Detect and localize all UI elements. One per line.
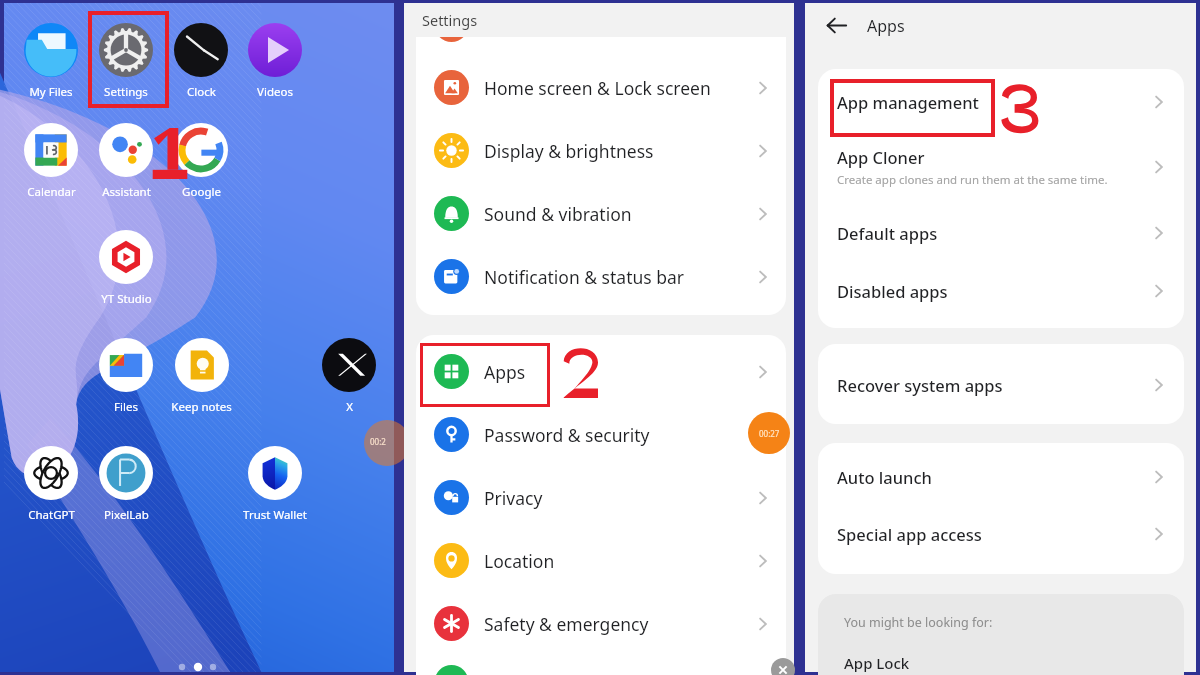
- staticText: 00:27: [759, 428, 780, 439]
- staticText: Recover system apps: [837, 374, 1003, 396]
- staticText: Clock: [187, 84, 216, 100]
- staticText: App Lock: [844, 653, 910, 673]
- button[interactable]: Trust Wallet: [243, 446, 307, 523]
- staticText: Sound & vibration: [484, 202, 632, 226]
- staticText: Privacy: [484, 486, 543, 510]
- button[interactable]: Home screen & Lock screen: [416, 56, 786, 119]
- button[interactable]: Safety & emergency: [416, 592, 786, 655]
- button[interactable]: Calendar: [24, 123, 78, 200]
- staticText: Settings: [104, 84, 148, 100]
- button[interactable]: App management: [818, 73, 1184, 130]
- staticText: X: [346, 399, 353, 415]
- button[interactable]: Sound & vibration: [416, 182, 786, 245]
- staticText: Special app access: [837, 523, 982, 545]
- button[interactable]: PixelLab: [99, 446, 153, 523]
- staticText: You might be looking for:: [844, 614, 993, 631]
- button[interactable]: Keep notes: [171, 338, 232, 415]
- button[interactable]: Close: [771, 658, 795, 675]
- staticText: Display & brightness: [484, 139, 654, 163]
- button[interactable]: Location: [416, 529, 786, 592]
- button[interactable]: Google: [174, 123, 228, 200]
- button[interactable]: Assistant: [99, 123, 153, 200]
- button[interactable]: My Files: [24, 23, 78, 100]
- staticText: Location: [484, 549, 555, 573]
- button[interactable]: Timer: [748, 412, 790, 454]
- button[interactable]: Privacy: [416, 466, 786, 529]
- staticText: App management: [837, 91, 979, 113]
- staticText: Assistant: [102, 184, 151, 200]
- staticText: Create app clones and run them at the sa…: [837, 172, 1108, 188]
- staticText: My Files: [29, 84, 73, 100]
- staticText: Files: [114, 399, 138, 415]
- staticText: Keep notes: [171, 399, 232, 415]
- button[interactable]: Videos: [248, 23, 302, 100]
- staticText: ChatGPT: [28, 507, 75, 523]
- staticText: Auto launch: [837, 466, 932, 488]
- staticText: Password & security: [484, 423, 650, 447]
- button[interactable]: Timer: [370, 436, 386, 447]
- button[interactable]: ChatGPT: [24, 446, 78, 523]
- button[interactable]: Apps: [416, 340, 786, 403]
- button[interactable]: Auto launch: [818, 448, 1184, 505]
- staticText: Trust Wallet: [243, 507, 307, 523]
- button[interactable]: App Cloner: [818, 130, 1184, 204]
- button[interactable]: Recover system apps: [818, 347, 1184, 422]
- button[interactable]: Settings: [99, 23, 153, 100]
- button[interactable]: Back: [823, 12, 849, 38]
- staticText: Safety & emergency: [484, 612, 649, 636]
- staticText: Apps: [867, 15, 905, 37]
- staticText: Default apps: [837, 222, 938, 244]
- staticText: Home screen & Lock screen: [484, 76, 711, 100]
- staticText: Notification & status bar: [484, 265, 685, 289]
- button[interactable]: YT Studio: [99, 230, 153, 307]
- button[interactable]: Display & brightness: [416, 119, 786, 182]
- button[interactable]: Notification & status bar: [416, 245, 786, 308]
- button[interactable]: Password & security: [416, 403, 786, 466]
- button[interactable]: Special app access: [818, 505, 1184, 562]
- staticText: Calendar: [27, 184, 76, 200]
- button[interactable]: Clock: [174, 23, 228, 100]
- staticText: Videos: [257, 84, 293, 100]
- staticText: App Cloner: [837, 146, 925, 168]
- button[interactable]: Disabled apps: [818, 262, 1184, 320]
- staticText: 00:2: [370, 436, 386, 447]
- staticText: Apps: [484, 360, 526, 384]
- staticText: Settings: [422, 10, 478, 30]
- button[interactable]: Default apps: [818, 204, 1184, 262]
- staticText: Google: [182, 184, 221, 200]
- staticText: Disabled apps: [837, 280, 948, 302]
- staticText: PixelLab: [104, 507, 149, 523]
- button[interactable]: Files: [99, 338, 153, 415]
- button[interactable]: X: [322, 338, 376, 415]
- staticText: YT Studio: [101, 291, 152, 307]
